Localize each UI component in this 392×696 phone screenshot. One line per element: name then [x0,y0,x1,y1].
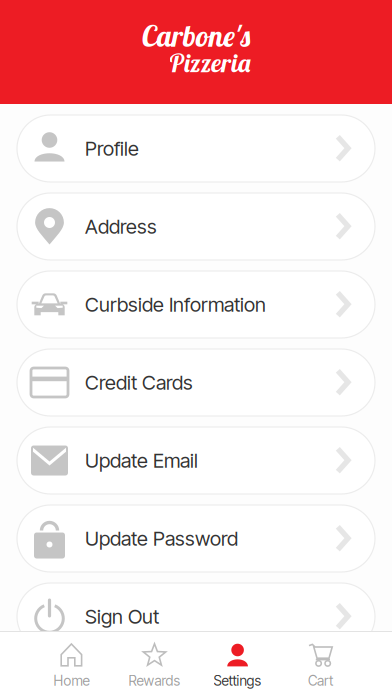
button[interactable]: Home [30,642,113,689]
button[interactable]: Cart [279,642,362,689]
button[interactable]: Curbside Information [17,271,375,338]
button[interactable]: Address [17,193,375,260]
staticText: Update Password [85,526,238,551]
staticText: Curbside Information [85,292,266,317]
button[interactable]: Profile [17,115,375,182]
staticText: Update Email [85,448,198,473]
staticText: Rewards [128,672,180,689]
staticText: Cart [308,672,333,689]
button[interactable]: Update Email [17,427,375,494]
button[interactable]: Update Password [17,505,375,572]
button[interactable]: Settings [196,642,279,689]
button[interactable]: Credit Cards [17,349,375,416]
staticText: Home [53,672,89,689]
button[interactable]: Rewards [113,642,196,689]
staticText: Profile [85,136,139,161]
staticText: Settings [213,672,261,689]
staticText: Address [85,214,157,239]
staticText: Carbone's [142,17,250,54]
staticText: Credit Cards [85,370,193,395]
staticText: Sign Out [85,604,159,629]
button[interactable]: Sign Out [17,583,375,650]
staticText: Pizzeria [169,47,250,79]
